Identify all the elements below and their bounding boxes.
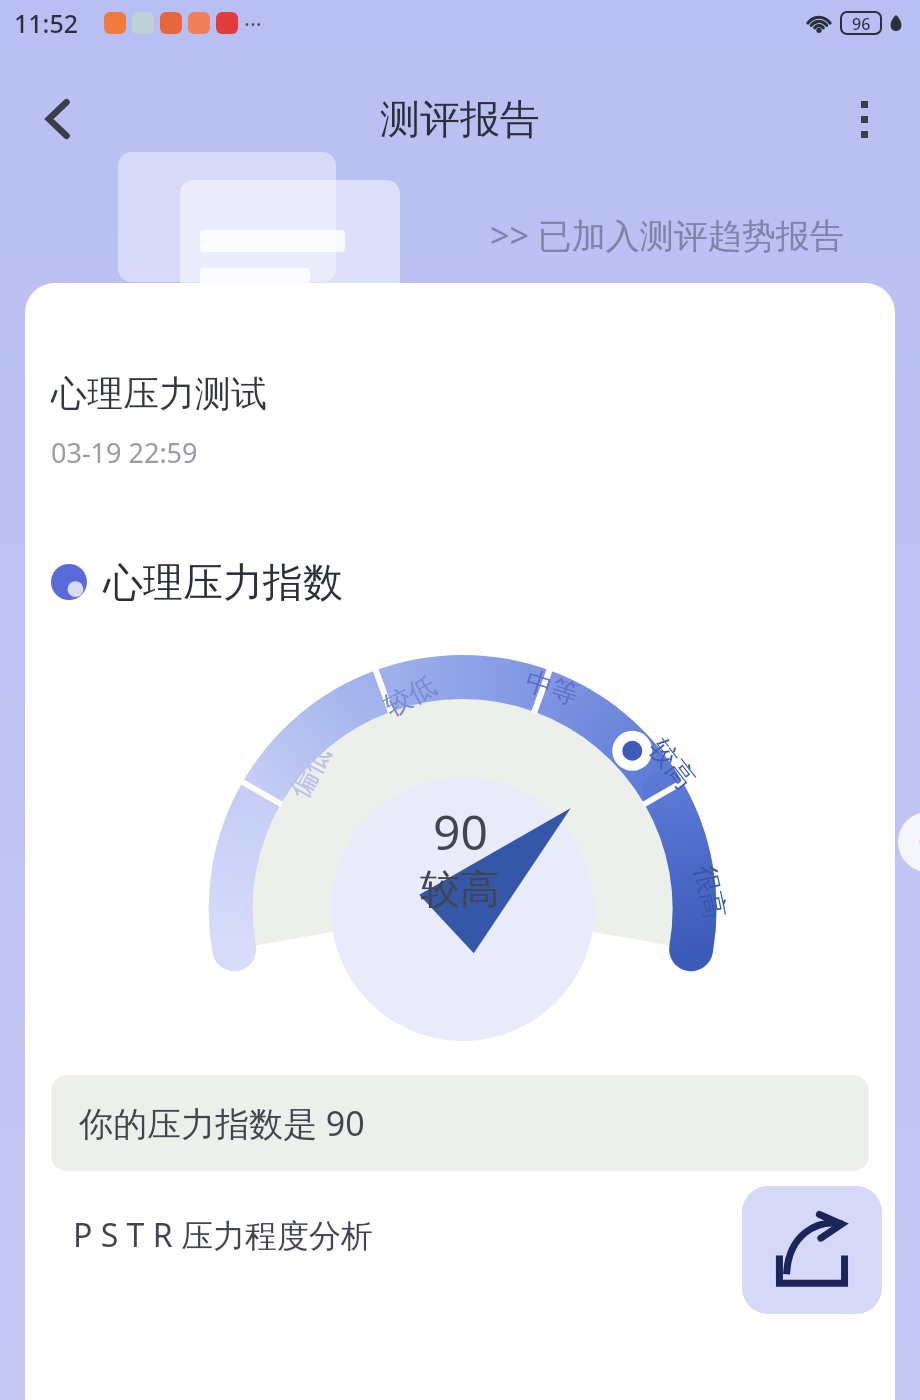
button[interactable]: >> 已加入测评趋势报告: [490, 212, 844, 258]
staticText: 03-19 22:59: [51, 434, 198, 471]
staticText: 偏低: [282, 740, 338, 804]
staticText: 很高: [688, 862, 732, 922]
staticText: ···: [244, 8, 262, 38]
staticText: 你的压力指数是 90: [79, 1100, 365, 1146]
staticText: 90: [433, 799, 488, 864]
staticText: 11:52: [14, 6, 79, 40]
staticText: 中等: [521, 663, 583, 712]
button[interactable]: More options: [832, 87, 896, 151]
button[interactable]: Badge: [898, 812, 920, 872]
button[interactable]: Back: [22, 82, 96, 156]
staticText: 较高: [420, 864, 500, 914]
staticText: 96: [852, 13, 871, 33]
staticText: 心理压力测试: [51, 371, 267, 416]
staticText: 测评报告: [380, 94, 540, 144]
button[interactable]: 你的压力指数是 90: [51, 1075, 869, 1171]
staticText: P S T R 压力程度分析: [73, 1213, 373, 1257]
staticText: 较低: [378, 668, 442, 724]
staticText: 较高: [642, 732, 702, 796]
button[interactable]: 心理压力指数: [51, 557, 343, 607]
button[interactable]: Share: [742, 1186, 882, 1314]
staticText: 心理压力指数: [103, 557, 343, 607]
staticText: >> 已加入测评趋势报告: [490, 212, 844, 258]
